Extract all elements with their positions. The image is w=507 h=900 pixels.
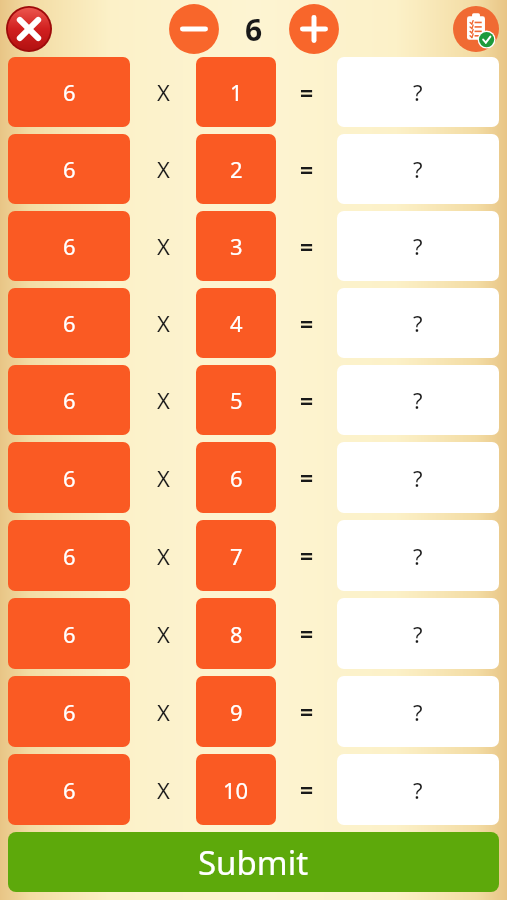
staticText: 6 <box>63 308 76 338</box>
staticText: 6 <box>245 9 263 50</box>
button[interactable]: Increase <box>288 3 340 55</box>
button[interactable]: ? <box>337 754 499 825</box>
staticText: 5 <box>230 385 243 415</box>
staticText: 6 <box>63 231 76 261</box>
staticText: = <box>300 385 314 416</box>
button[interactable]: 2 <box>196 134 276 204</box>
staticText: ? <box>413 463 423 493</box>
button[interactable]: ? <box>337 520 499 591</box>
button[interactable]: 6 <box>8 211 130 281</box>
staticText: 6 <box>63 154 76 184</box>
staticText: = <box>300 308 314 339</box>
staticText: = <box>300 774 314 805</box>
button[interactable]: 4 <box>196 288 276 358</box>
button[interactable]: ? <box>337 442 499 513</box>
staticText: = <box>300 77 314 108</box>
staticText: 6 <box>63 463 76 493</box>
button[interactable]: 6 <box>8 598 130 669</box>
staticText: 7 <box>230 541 243 571</box>
button[interactable]: 9 <box>196 676 276 747</box>
button[interactable]: ? <box>337 288 499 358</box>
staticText: X <box>157 385 170 415</box>
staticText: X <box>157 463 170 493</box>
staticText: 6 <box>63 775 76 805</box>
staticText: Submit <box>198 840 309 885</box>
button[interactable]: ? <box>337 365 499 435</box>
button[interactable]: 10 <box>196 754 276 825</box>
staticText: ? <box>413 541 423 571</box>
staticText: X <box>157 775 170 805</box>
staticText: 6 <box>230 463 243 493</box>
staticText: ? <box>413 697 423 727</box>
staticText: 6 <box>63 77 76 107</box>
staticText: 6 <box>63 385 76 415</box>
staticText: 10 <box>223 775 249 805</box>
button[interactable]: Submit <box>8 832 499 892</box>
staticText: X <box>157 697 170 727</box>
staticText: = <box>300 231 314 262</box>
staticText: ? <box>413 385 423 415</box>
staticText: X <box>157 154 170 184</box>
staticText: ? <box>413 308 423 338</box>
button[interactable]: 6 <box>8 134 130 204</box>
button[interactable]: ? <box>337 598 499 669</box>
staticText: X <box>157 308 170 338</box>
staticText: X <box>157 541 170 571</box>
staticText: 1 <box>230 77 243 107</box>
button[interactable]: 6 <box>8 57 130 127</box>
button[interactable]: 6 <box>8 676 130 747</box>
staticText: 6 <box>63 541 76 571</box>
staticText: = <box>300 540 314 571</box>
staticText: ? <box>413 775 423 805</box>
staticText: 9 <box>230 697 243 727</box>
button[interactable]: 6 <box>8 754 130 825</box>
staticText: X <box>157 231 170 261</box>
staticText: 2 <box>230 154 243 184</box>
button[interactable]: 5 <box>196 365 276 435</box>
staticText: X <box>157 77 170 107</box>
button[interactable]: 8 <box>196 598 276 669</box>
staticText: = <box>300 618 314 649</box>
button[interactable]: 6 <box>196 442 276 513</box>
button[interactable]: 7 <box>196 520 276 591</box>
button[interactable]: 3 <box>196 211 276 281</box>
button[interactable]: 6 <box>8 520 130 591</box>
button[interactable]: Decrease <box>168 3 220 55</box>
button[interactable]: ? <box>337 676 499 747</box>
button[interactable]: Close <box>6 6 52 52</box>
staticText: X <box>157 619 170 649</box>
button[interactable]: Results <box>453 6 499 52</box>
staticText: 6 <box>63 619 76 649</box>
button[interactable]: 6 <box>8 442 130 513</box>
staticText: ? <box>413 154 423 184</box>
staticText: ? <box>413 77 423 107</box>
staticText: ? <box>413 619 423 649</box>
staticText: 8 <box>230 619 243 649</box>
button[interactable]: ? <box>337 134 499 204</box>
button[interactable]: 6 <box>8 288 130 358</box>
button[interactable]: 6 <box>8 365 130 435</box>
staticText: ? <box>413 231 423 261</box>
button[interactable]: ? <box>337 211 499 281</box>
staticText: 3 <box>230 231 243 261</box>
staticText: = <box>300 462 314 493</box>
button[interactable]: 1 <box>196 57 276 127</box>
staticText: = <box>300 154 314 185</box>
staticText: = <box>300 696 314 727</box>
button[interactable]: ? <box>337 57 499 127</box>
staticText: 4 <box>230 308 243 338</box>
staticText: 6 <box>63 697 76 727</box>
